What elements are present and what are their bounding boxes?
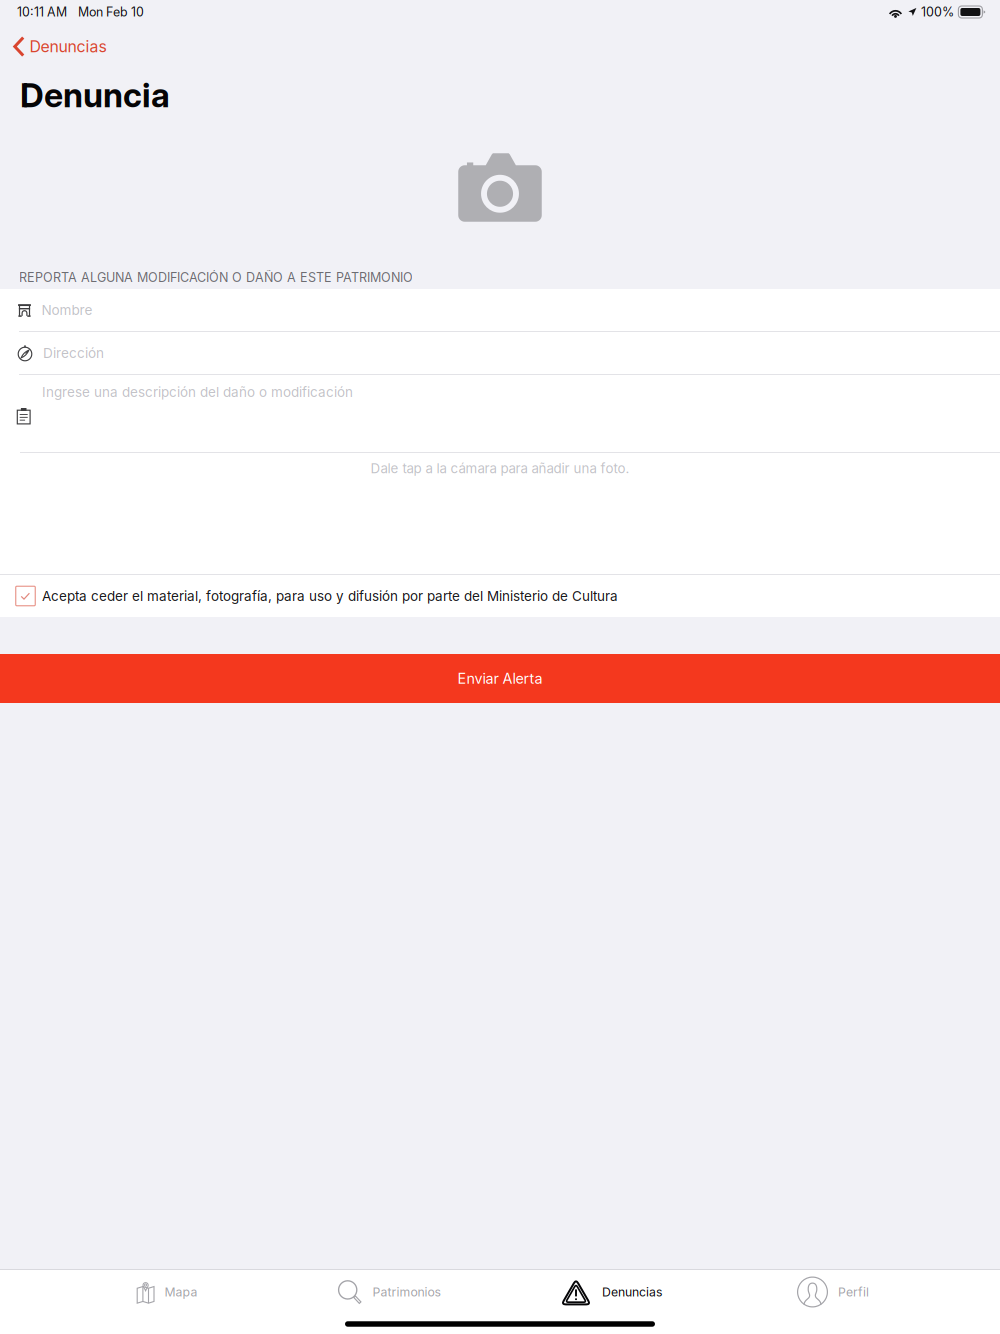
button[interactable]: Mapa [56,1270,278,1314]
staticText: Enviar Alerta [457,670,542,687]
staticText: Mon Feb 10 [78,4,144,19]
staticText: Denuncia [20,75,170,115]
button[interactable]: Añadir foto [0,121,1000,254]
button[interactable]: Acepta ceder el material, fotografía, pa… [0,575,1000,617]
staticText: Patrimonios [372,1285,440,1299]
staticText: Nombre [41,302,92,318]
staticText: Dale tap a la cámara para añadir una fot… [370,460,629,476]
staticText: Acepta ceder el material, fotografía, pa… [42,588,618,604]
staticText: Ingrese una descripción del daño o modif… [42,384,353,400]
staticText: Denuncias [29,37,106,56]
staticText: Mapa [164,1285,197,1299]
button[interactable]: Patrimonios [278,1270,500,1314]
staticText: REPORTA ALGUNA MODIFICACIÓN O DAÑO A EST… [19,270,413,285]
staticText: Dirección [43,345,104,361]
staticText: 10:11 AM [17,4,67,19]
staticText: Perfil [838,1285,869,1299]
button[interactable]: Denuncias [0,33,106,60]
staticText: 100% [921,4,954,20]
button[interactable]: Perfil [722,1270,944,1314]
button[interactable]: Enviar Alerta [0,654,1000,703]
button[interactable]: Denuncias [500,1270,722,1314]
staticText: Denuncias [602,1285,662,1299]
